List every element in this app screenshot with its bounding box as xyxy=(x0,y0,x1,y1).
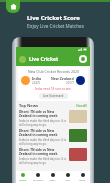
staticText: Top News xyxy=(19,103,39,108)
button[interactable]: Dhoni: TN side vs New Zealand in coming … xyxy=(19,129,87,146)
staticText: Live xyxy=(65,178,70,181)
staticText: 223/5 xyxy=(32,81,40,85)
staticText: More xyxy=(79,178,86,181)
button[interactable]: Home xyxy=(6,0,20,13)
button[interactable]: Matches xyxy=(30,171,45,183)
button[interactable]: Menu xyxy=(19,56,26,63)
staticText: 201/7 xyxy=(66,81,74,85)
button[interactable]: Dhoni: TN side vs New Zealand in coming … xyxy=(19,148,87,165)
button[interactable]: Profile xyxy=(79,55,87,63)
staticText: View All xyxy=(76,104,87,108)
staticText: India to make the third day run. It is s… xyxy=(19,119,67,127)
staticText: Live Cricket xyxy=(29,56,59,63)
button[interactable]: News xyxy=(45,171,60,183)
staticText: India xyxy=(32,76,41,81)
button[interactable]: Live Scorecard xyxy=(43,94,64,98)
staticText: Dhoni: TN side vs New Zealand in coming … xyxy=(19,129,67,137)
button[interactable]: View All xyxy=(76,104,87,108)
button[interactable]: More xyxy=(75,171,90,183)
button[interactable]: New Club Cricket Records 2020 xyxy=(18,67,88,101)
button[interactable]: Live xyxy=(60,171,75,183)
staticText: Matches xyxy=(33,178,43,181)
staticText: India need 18 runs to win xyxy=(35,87,71,91)
staticText: News xyxy=(49,178,56,181)
staticText: Dhoni: TN side vs New Zealand in coming … xyxy=(19,110,67,118)
button[interactable]: Dhoni: TN side vs New Zealand in coming … xyxy=(19,110,87,127)
staticText: Live Cricket Score xyxy=(27,14,80,22)
staticText: Enjoy Live Cricket Matches xyxy=(27,23,84,29)
staticText: Home xyxy=(19,178,27,181)
button[interactable]: Home xyxy=(16,171,30,183)
staticText: Dhoni: TN side vs New Zealand in coming … xyxy=(19,148,67,156)
staticText: India to make the third day run. It is s… xyxy=(19,138,67,146)
staticText: New Zealand xyxy=(51,76,74,81)
staticText: Live Scorecard xyxy=(43,94,64,98)
staticText: India to make the third day run. It is s… xyxy=(19,157,67,165)
staticText: New Club Cricket Records 2020 xyxy=(28,69,79,74)
